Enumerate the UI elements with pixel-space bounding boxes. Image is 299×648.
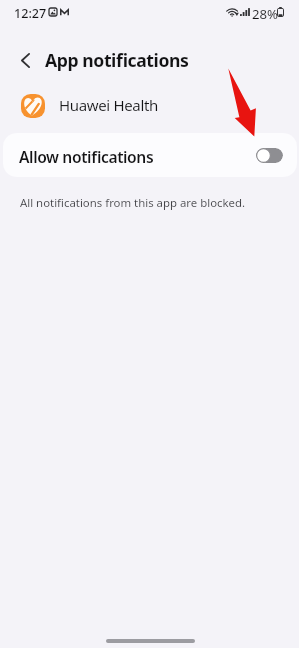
staticText: Allow notifications [19,146,154,167]
button[interactable]: Allow notifications [3,133,297,177]
staticText: App notifications [45,48,189,72]
button[interactable]: Back [6,41,44,79]
staticText: 12:27 [14,5,47,22]
staticText: 28% [252,5,279,23]
staticText: All notifications from this app are bloc… [20,195,246,211]
staticText: Huawei Health [59,95,158,115]
button[interactable]: Allow notifications toggle [256,148,283,163]
button[interactable]: Huawei Health [0,88,299,122]
